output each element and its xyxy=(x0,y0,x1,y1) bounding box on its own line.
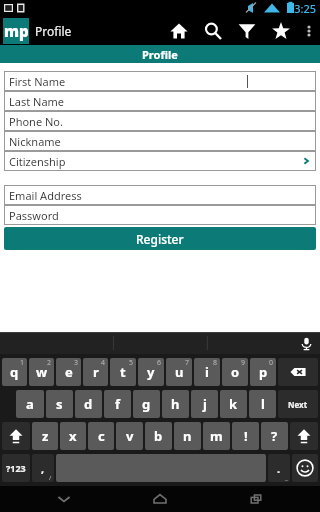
button[interactable]: c xyxy=(88,422,114,450)
button[interactable]: Home xyxy=(162,16,196,45)
button[interactable]: Search xyxy=(196,16,230,45)
staticText: ?123 xyxy=(6,462,26,474)
staticText: u xyxy=(175,363,184,381)
button[interactable]: Citizenship xyxy=(4,151,316,171)
staticText: Last Name xyxy=(9,94,65,109)
staticText: j xyxy=(203,395,207,413)
button[interactable]: e xyxy=(56,358,81,386)
button[interactable]: o xyxy=(222,358,248,386)
button[interactable]: Backspace xyxy=(278,358,318,386)
staticText: o xyxy=(231,363,240,381)
button[interactable]: i xyxy=(194,358,220,386)
button[interactable]: Hide keyboard xyxy=(32,486,96,512)
staticText: b xyxy=(154,427,163,445)
staticText: . xyxy=(277,461,281,476)
button[interactable]: Register xyxy=(4,227,316,250)
button[interactable]: Favorites xyxy=(264,16,298,45)
staticText: 8 xyxy=(213,358,218,368)
staticText: Register xyxy=(136,231,184,247)
staticText: 9 xyxy=(241,358,246,368)
staticText: n xyxy=(183,427,192,445)
button[interactable]: n xyxy=(174,422,201,450)
staticText: a xyxy=(26,395,34,413)
button[interactable]: Home xyxy=(128,486,192,512)
button[interactable]: x xyxy=(60,422,86,450)
button[interactable]: t xyxy=(110,358,136,386)
button[interactable]: q xyxy=(2,358,27,386)
staticText: 13:25 xyxy=(288,1,317,16)
button[interactable]: Voice input xyxy=(292,332,320,354)
staticText: q xyxy=(10,363,19,381)
staticText: 5 xyxy=(129,358,134,368)
button[interactable]: Email Address xyxy=(4,185,316,205)
staticText: t xyxy=(120,363,126,381)
button[interactable]: j xyxy=(191,390,218,418)
staticText: First Name xyxy=(9,74,66,89)
button[interactable]: z xyxy=(32,422,58,450)
button[interactable]: Shift xyxy=(2,422,30,450)
staticText: w xyxy=(36,363,48,381)
button[interactable]: a xyxy=(16,390,44,418)
button[interactable]: , xyxy=(32,454,54,482)
button[interactable]: h xyxy=(162,390,189,418)
staticText: mp xyxy=(4,21,29,41)
staticText: k xyxy=(229,395,238,413)
button[interactable]: p xyxy=(250,358,276,386)
button[interactable]: k xyxy=(220,390,247,418)
button[interactable]: m xyxy=(203,422,230,450)
button[interactable]: Password xyxy=(4,205,316,225)
staticText: e xyxy=(65,363,73,381)
button[interactable]: ! xyxy=(232,422,259,450)
staticText: v xyxy=(126,427,134,445)
staticText: _ xyxy=(285,474,288,482)
button[interactable]: More options xyxy=(298,16,320,45)
staticText: 2 xyxy=(47,358,52,368)
button[interactable]: mp xyxy=(0,18,72,44)
button[interactable]: s xyxy=(46,390,73,418)
staticText: g xyxy=(142,395,151,413)
button[interactable]: ? xyxy=(261,422,288,450)
staticText: Profile xyxy=(142,47,178,62)
staticText: 3 xyxy=(74,358,79,368)
button[interactable]: y xyxy=(138,358,164,386)
button[interactable]: Phone No. xyxy=(4,111,316,131)
button[interactable]: Emoji xyxy=(292,454,318,482)
staticText: 6 xyxy=(157,358,162,368)
button[interactable]: ?123 xyxy=(2,454,30,482)
button[interactable]: g xyxy=(133,390,160,418)
button[interactable]: u xyxy=(166,358,192,386)
button[interactable]: Next xyxy=(278,390,318,418)
staticText: Phone No. xyxy=(9,114,63,129)
button[interactable]: Filter xyxy=(230,16,264,45)
button[interactable]: v xyxy=(116,422,143,450)
button[interactable]: . xyxy=(268,454,290,482)
staticText: Nickname xyxy=(9,134,61,149)
staticText: 0 xyxy=(269,358,274,368)
button[interactable]: First Name xyxy=(4,71,316,91)
staticText: r xyxy=(93,363,99,381)
staticText: i xyxy=(205,363,209,381)
staticText: d xyxy=(84,395,93,413)
button[interactable]: Shift xyxy=(290,422,318,450)
staticText: 4 xyxy=(101,358,106,368)
staticText: m xyxy=(210,427,223,445)
staticText: ! xyxy=(244,427,248,445)
button[interactable]: w xyxy=(29,358,54,386)
button[interactable]: Recent apps xyxy=(224,486,288,512)
staticText: Email Address xyxy=(9,188,82,203)
staticText: s xyxy=(56,395,63,413)
staticText: Next xyxy=(288,399,308,410)
button[interactable]: l xyxy=(249,390,276,418)
staticText: c xyxy=(98,427,105,445)
button[interactable]: Last Name xyxy=(4,91,316,111)
button[interactable]: b xyxy=(145,422,172,450)
button[interactable]: d xyxy=(75,390,102,418)
button[interactable]: f xyxy=(104,390,131,418)
staticText: h xyxy=(171,395,180,413)
button[interactable]: Nickname xyxy=(4,131,316,151)
staticText: y xyxy=(147,363,155,381)
staticText: f xyxy=(115,395,121,413)
staticText: l xyxy=(261,395,265,413)
button[interactable]: r xyxy=(83,358,108,386)
